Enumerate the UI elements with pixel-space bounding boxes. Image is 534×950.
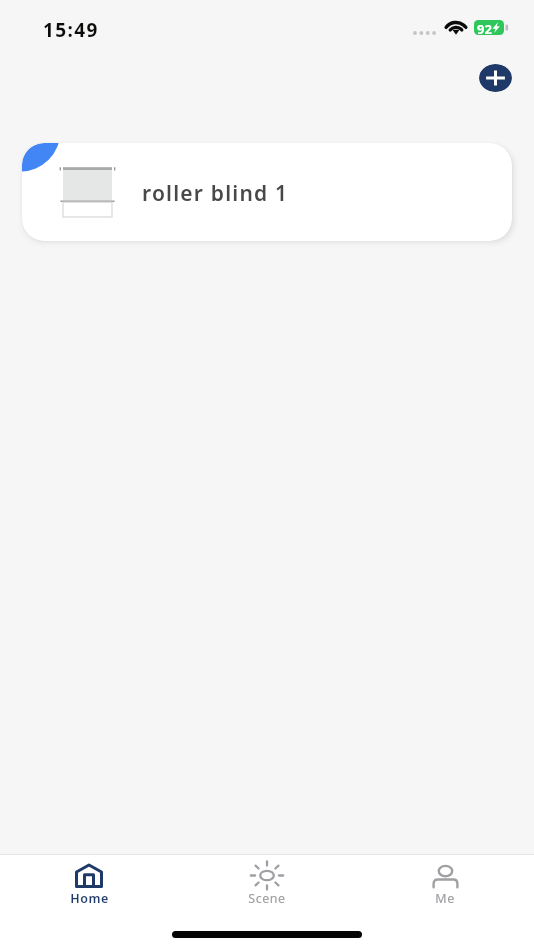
button[interactable]: Add device (479, 64, 512, 92)
staticText: Me (435, 890, 455, 907)
staticText: roller blind 1 (142, 179, 289, 208)
staticText: 92 (477, 20, 492, 35)
staticText: Home (70, 890, 109, 907)
staticText: Scene (248, 890, 286, 907)
button[interactable]: Scene (207, 855, 327, 907)
button[interactable]: Me (385, 855, 505, 907)
button[interactable]: roller blind 1 (22, 143, 512, 241)
staticText: 15:49 (43, 17, 99, 43)
button[interactable]: Home (29, 855, 149, 907)
